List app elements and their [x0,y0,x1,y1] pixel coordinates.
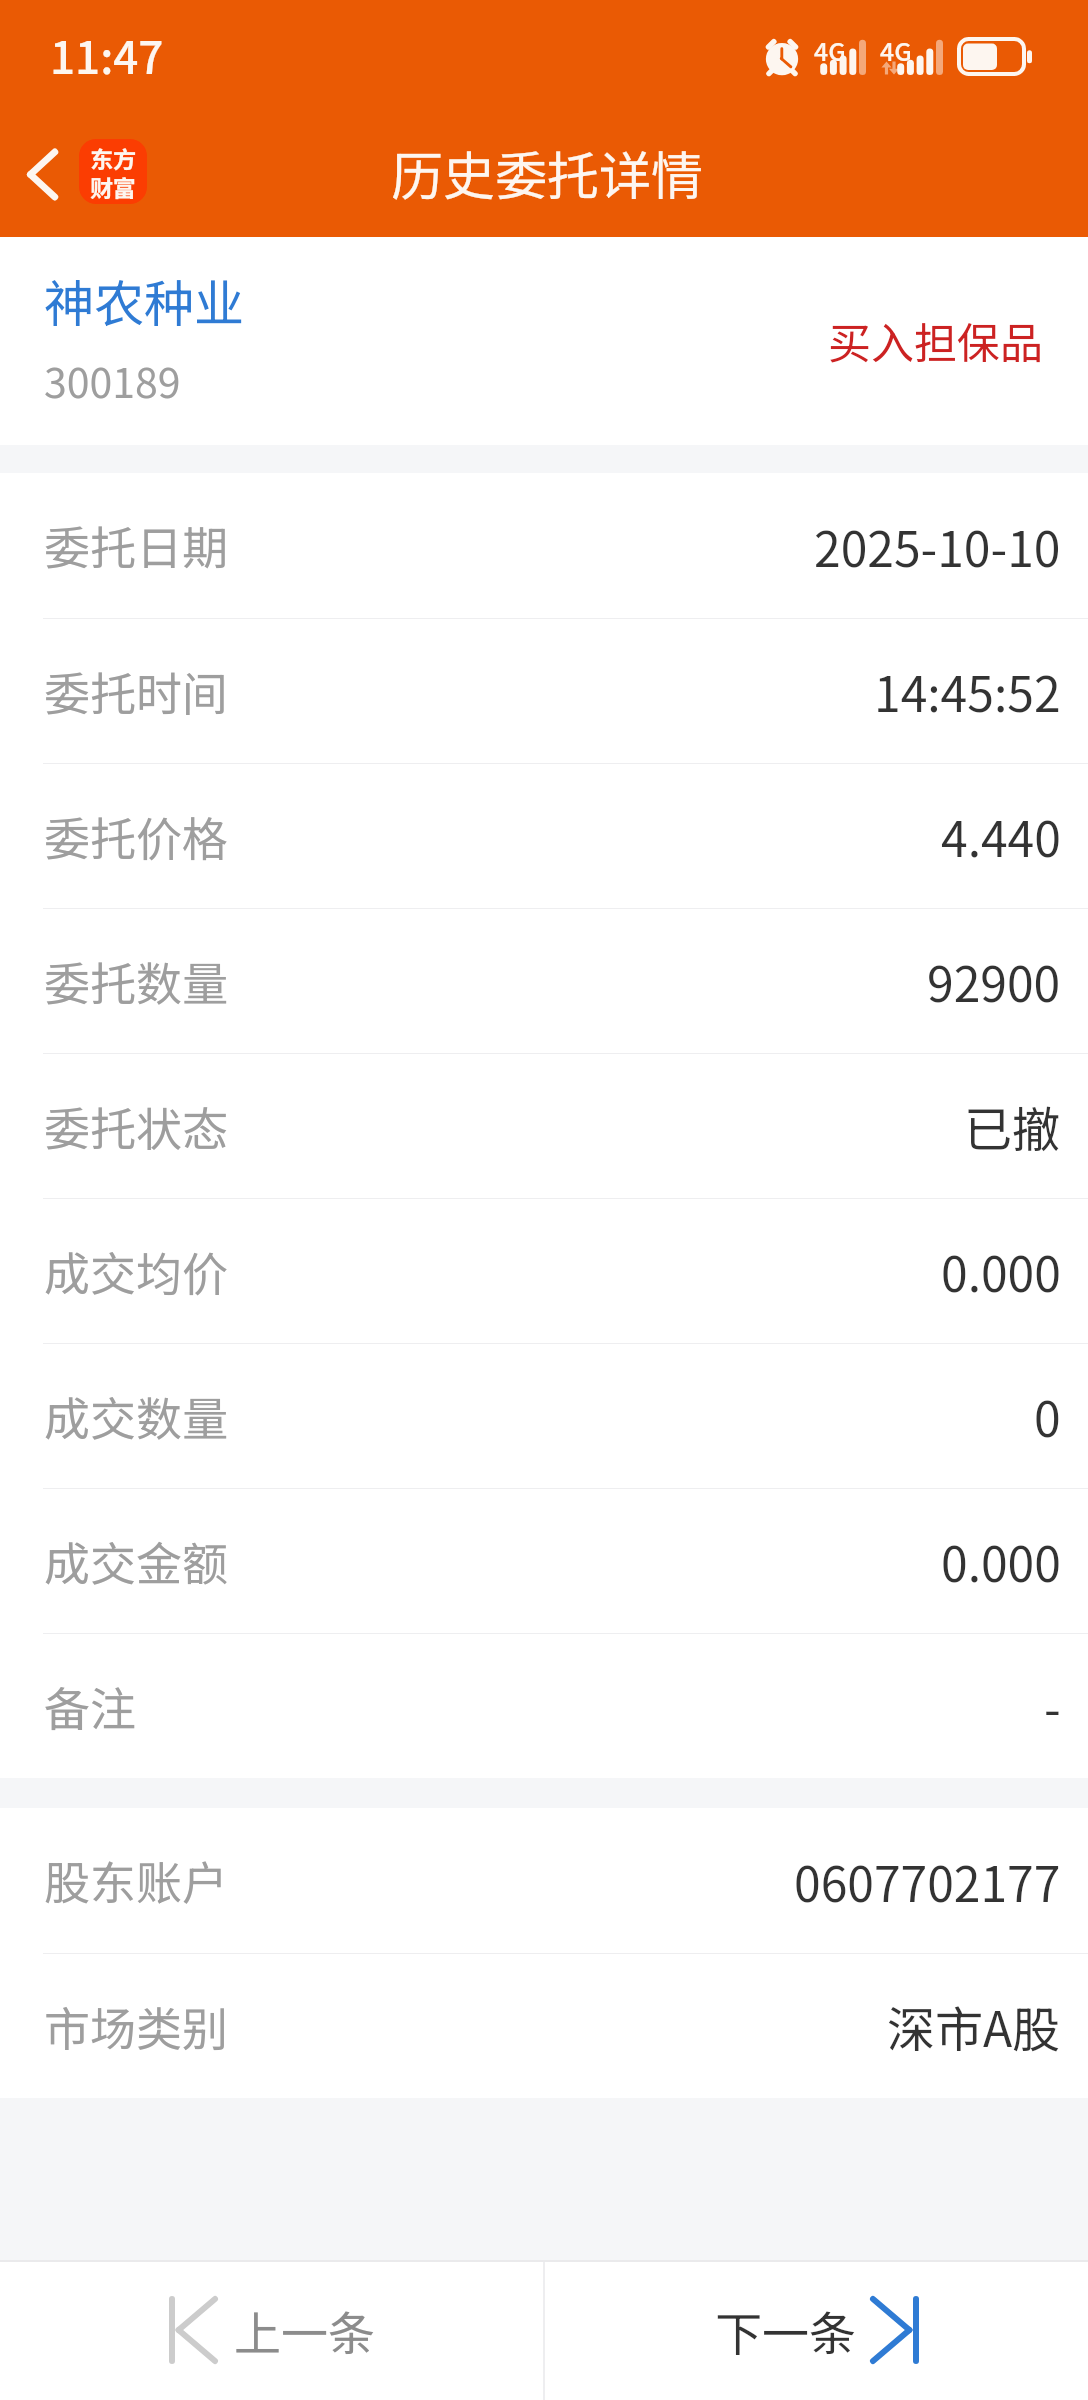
button[interactable]: 备注 [0,1634,1088,1778]
staticText: 买入担保品 [828,309,1043,371]
staticText: 0607702177 [794,1846,1061,1916]
staticText: 委托时间 [44,658,228,725]
staticText: 财富 [90,170,136,203]
button[interactable]: 委托价格 [0,764,1088,908]
staticText: 备注 [44,1673,136,1740]
staticText: 历史委托详情 [391,135,704,210]
staticText: 4G [814,32,846,68]
staticText: 委托日期 [44,512,228,579]
staticText: 神农种业 [44,264,244,336]
button[interactable]: 成交数量 [0,1344,1088,1488]
button[interactable]: 委托状态 [0,1054,1088,1198]
staticText: 市场类别 [44,1993,228,2060]
staticText: 深市A股 [887,1991,1061,2061]
button[interactable]: 上一条 [0,2262,543,2400]
button[interactable]: 成交均价 [0,1199,1088,1343]
staticText: 委托数量 [44,948,228,1015]
button[interactable]: 委托日期 [0,473,1088,618]
staticText: 股东账户 [44,1847,228,1914]
staticText: 0.000 [941,1236,1061,1306]
button[interactable]: 市场类别 [0,1954,1088,2098]
button[interactable]: 股东账户 [0,1808,1088,1953]
staticText: 东方 [90,141,136,174]
button[interactable]: 下一条 [545,2262,1088,2400]
button[interactable]: 委托时间 [0,619,1088,763]
staticText: 300189 [44,350,181,409]
staticText: 11:47 [50,23,164,87]
staticText: 已撤 [964,1091,1061,1161]
button[interactable]: 委托数量 [0,909,1088,1053]
staticText: 成交均价 [44,1238,228,1305]
staticText: 4G [880,32,912,68]
staticText: 委托价格 [44,803,228,870]
staticText: 0 [1034,1381,1061,1451]
staticText: 4.440 [941,801,1061,871]
staticText: 成交金额 [44,1528,228,1595]
staticText: 下一条 [715,2296,856,2364]
staticText: 0.000 [941,1526,1061,1596]
staticText: 成交数量 [44,1383,228,1450]
staticText: 上一条 [234,2296,375,2364]
button[interactable]: Back [0,130,163,219]
staticText: - [1044,1671,1061,1741]
staticText: 委托状态 [44,1093,228,1160]
staticText: 14:45:52 [874,656,1061,726]
staticText: 2025-10-10 [814,511,1061,581]
staticText: 92900 [927,946,1061,1016]
button[interactable]: 成交金额 [0,1489,1088,1633]
